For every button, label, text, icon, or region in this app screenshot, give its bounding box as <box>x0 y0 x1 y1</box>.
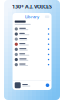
button[interactable] <box>12 57 51 62</box>
button[interactable] <box>12 31 51 37</box>
button[interactable] <box>12 42 51 47</box>
button[interactable]: Options <box>45 15 49 18</box>
button[interactable] <box>12 62 51 67</box>
button[interactable] <box>12 47 51 52</box>
button[interactable] <box>12 37 51 42</box>
staticText: Library <box>25 14 39 19</box>
button[interactable] <box>12 52 51 57</box>
button[interactable]: Play <box>46 83 49 87</box>
staticText: 130+ A.I. VOICES <box>12 3 52 10</box>
button[interactable] <box>12 26 51 31</box>
